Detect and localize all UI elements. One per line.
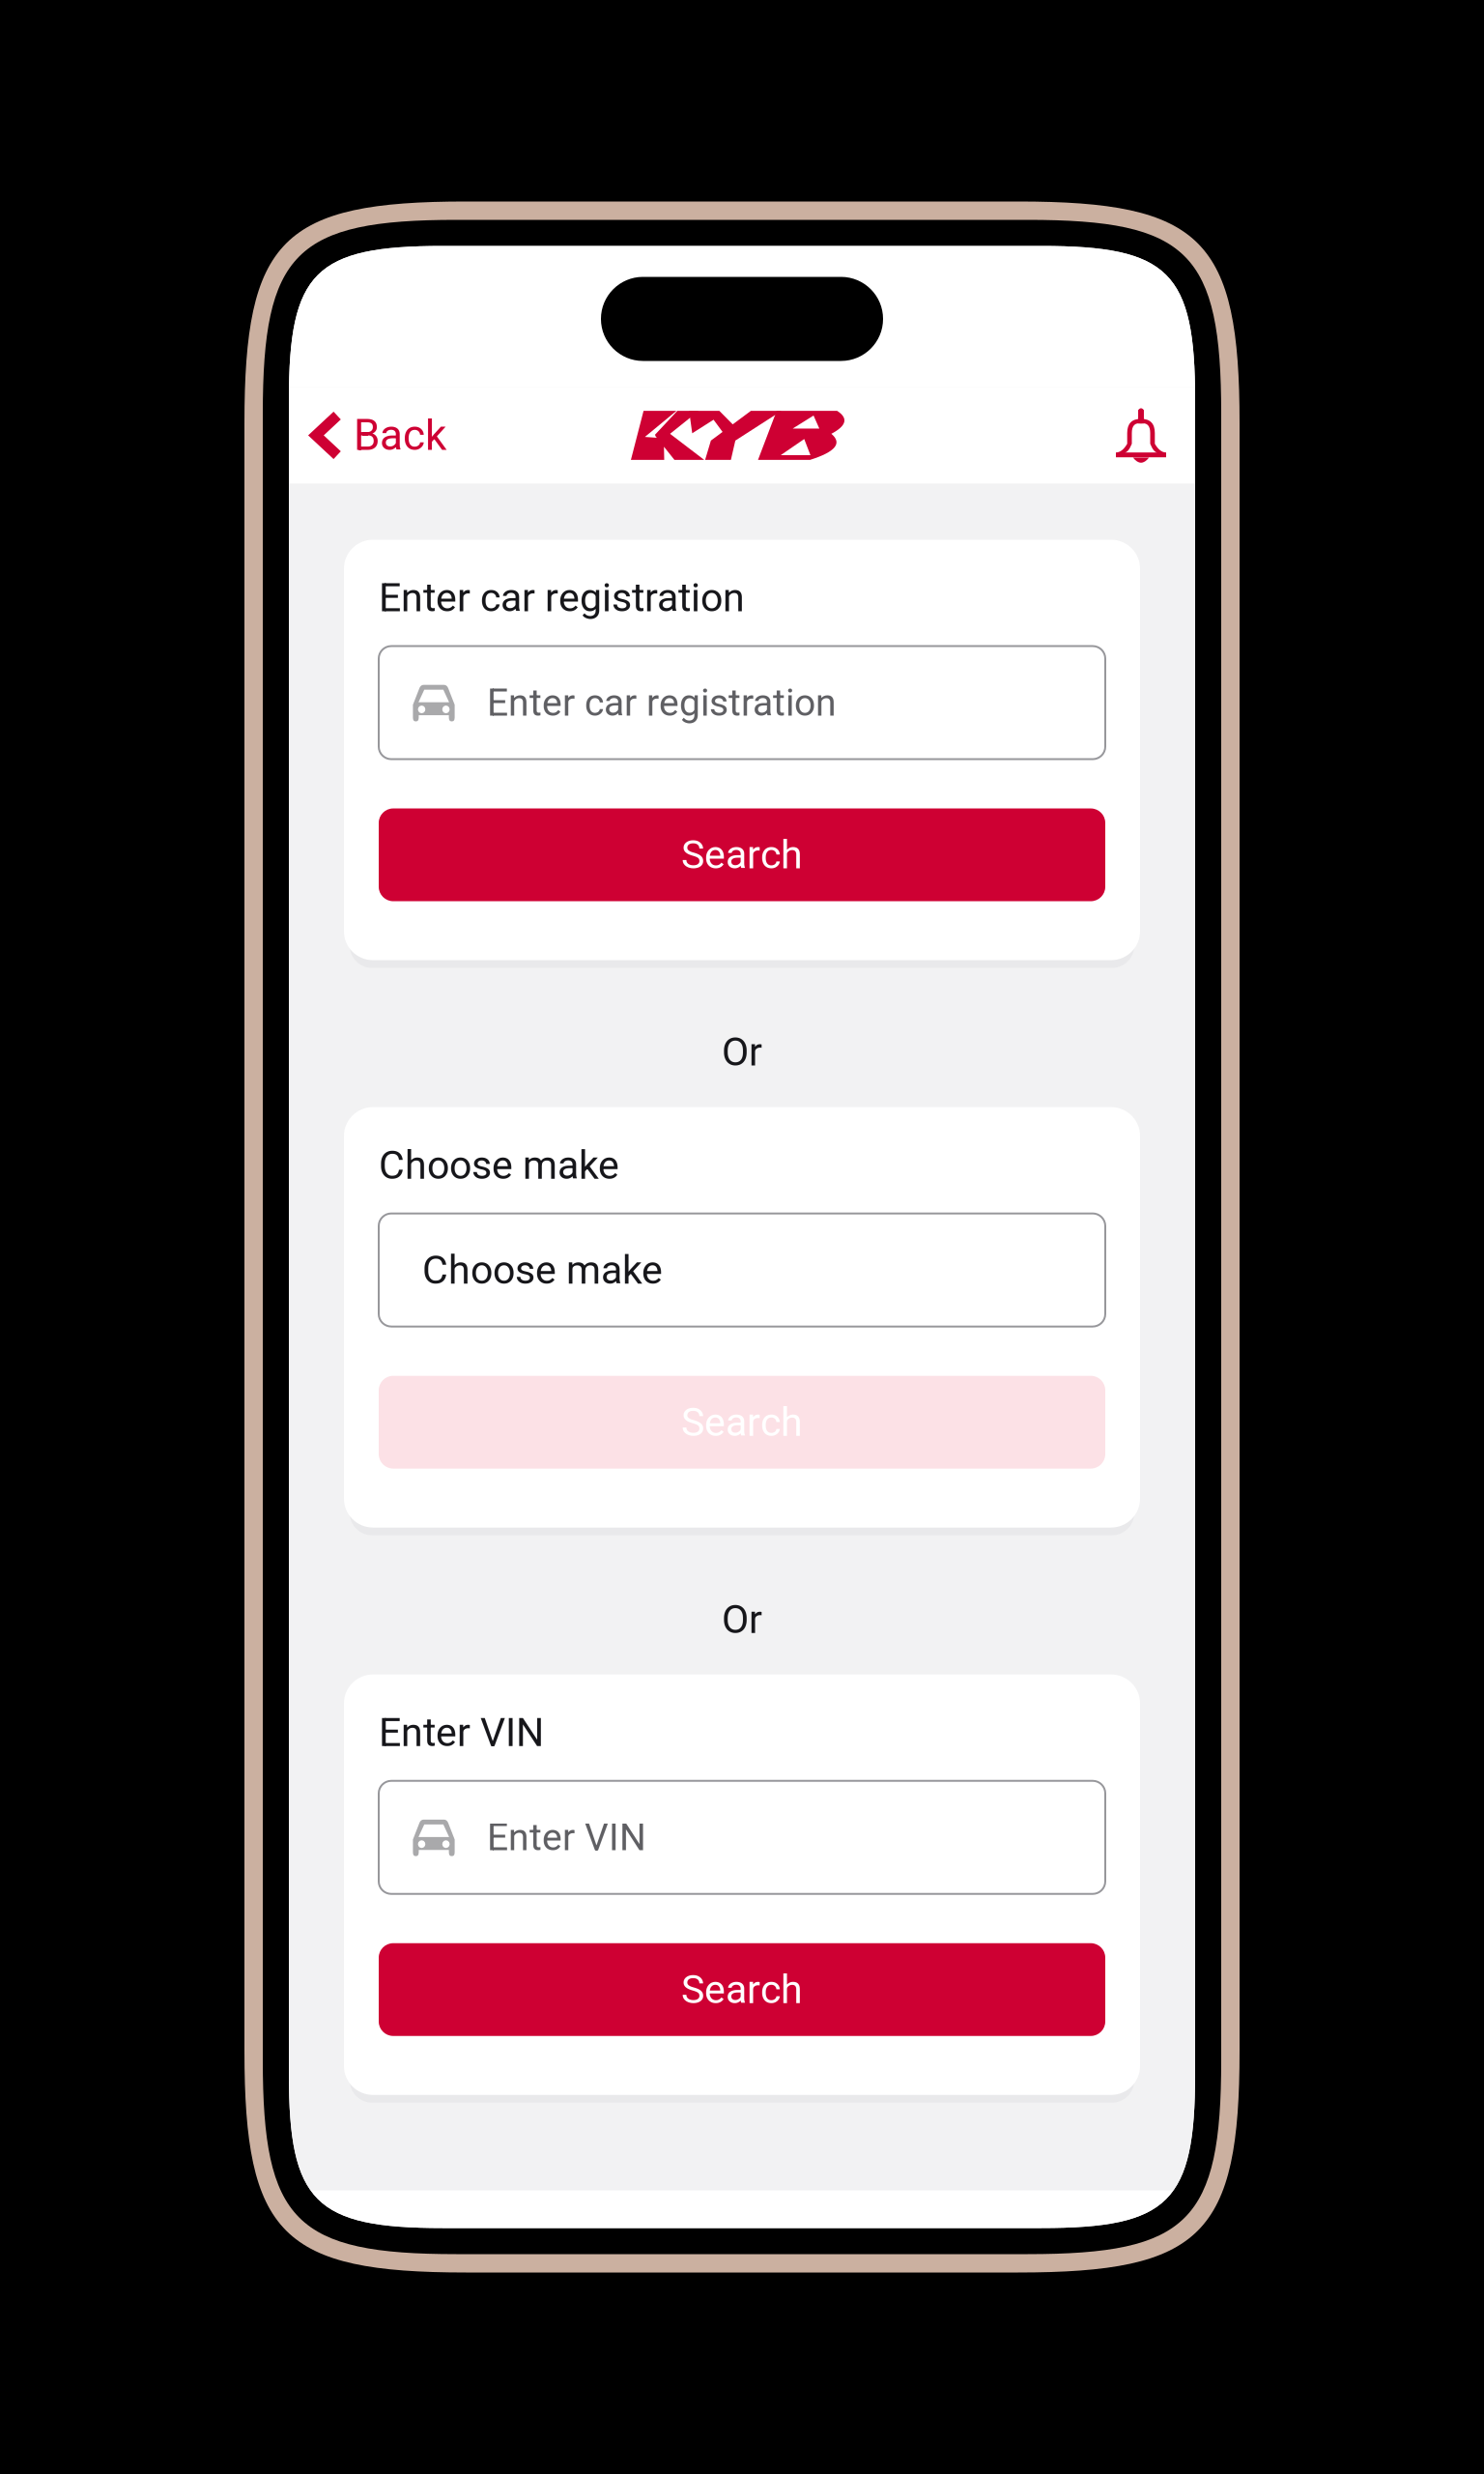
staticText: Enter car registration: [487, 681, 837, 725]
staticText: Search: [681, 1966, 803, 2013]
button[interactable]: Back: [289, 390, 446, 480]
button[interactable]: Search: [379, 808, 1105, 901]
staticText: Choose make: [422, 1247, 663, 1293]
button[interactable]: Notifications: [1116, 391, 1195, 480]
button[interactable]: Search: [379, 1376, 1105, 1469]
staticText: Back: [354, 410, 446, 460]
staticText: Search: [681, 1399, 803, 1445]
staticText: Or: [722, 1596, 762, 1643]
staticText: Enter car registration: [379, 575, 745, 621]
button[interactable]: Enter car registration: [379, 646, 1105, 759]
staticText: Search: [681, 832, 803, 878]
staticText: Enter VIN: [379, 1709, 544, 1756]
button[interactable]: Enter VIN: [379, 1781, 1105, 1894]
staticText: Enter VIN: [487, 1815, 646, 1859]
staticText: Choose make: [379, 1142, 619, 1188]
staticText: Or: [722, 1029, 762, 1075]
button[interactable]: Search: [379, 1943, 1105, 2036]
button[interactable]: Choose make: [379, 1213, 1105, 1326]
